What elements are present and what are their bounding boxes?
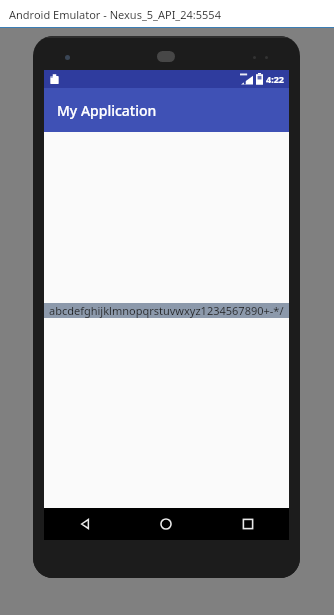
button[interactable]: abcdefghijklmnopqrstuvwxyz1234567890+-*/ (44, 303, 289, 318)
button[interactable]: Back (44, 508, 125, 540)
button[interactable]: Recent apps (207, 508, 289, 540)
staticText: My Application (57, 101, 157, 120)
staticText: abcdefghijklmnopqrstuvwxyz1234567890+-*/ (49, 303, 284, 318)
button[interactable]: Home (125, 508, 207, 540)
staticText: 4:22 (266, 73, 284, 85)
button[interactable]: My Application (44, 88, 289, 132)
staticText: Android Emulator - Nexus_5_API_24:5554 (9, 7, 221, 22)
